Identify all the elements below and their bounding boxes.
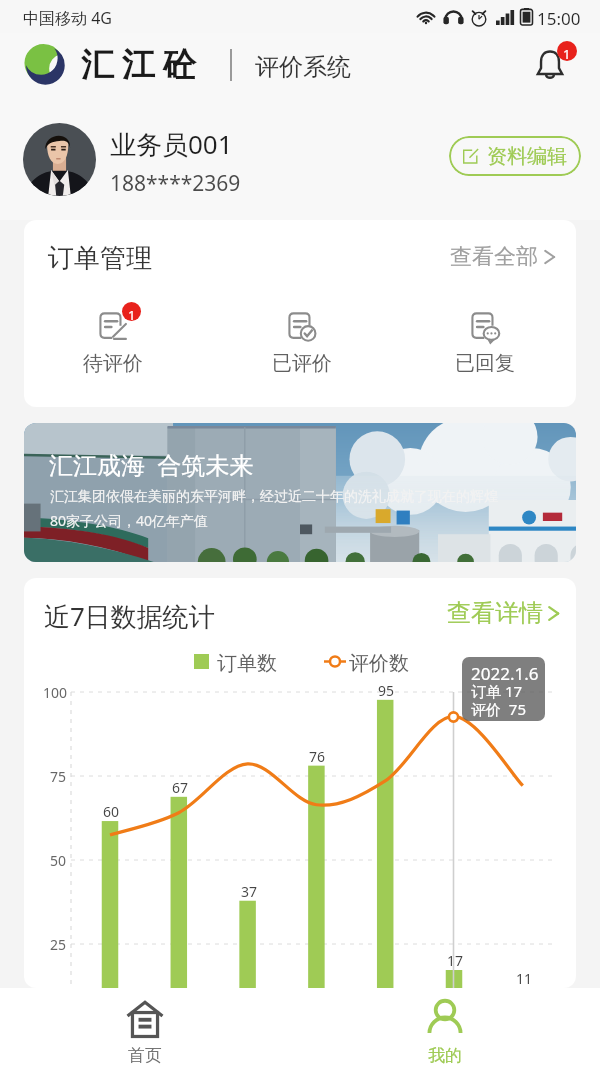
staticText: 1 [128,306,136,324]
button[interactable]: 查看全部 [444,242,562,272]
button[interactable]: 汇江成海 合筑未来 [24,423,576,562]
staticText: 2022.1.6 [471,662,539,685]
staticText: 37 [241,882,258,901]
staticText: 查看全部 [450,243,538,271]
staticText: 25 [50,935,67,954]
staticText: 188****2369 [110,169,241,198]
staticText: 15:00 [537,7,581,30]
staticText: 1 [563,45,571,63]
staticText: 11 [516,969,533,988]
staticText: 评价数 [349,651,409,676]
staticText: 资料编辑 [487,144,567,169]
staticText: 订单 17 [471,681,523,701]
button[interactable]: 查看详情 [441,598,566,628]
button[interactable]: 已评价 [257,304,347,376]
staticText: 近7日数据统计 [44,598,215,634]
staticText: 汇江成海 合筑未来 [49,448,254,481]
staticText: 订单管理 [48,242,152,275]
staticText: 60 [103,802,120,821]
staticText: 80家子公司，40亿年产值 [50,511,209,530]
button[interactable]: 已回复 [440,304,530,376]
staticText: 首页 [128,1045,162,1066]
staticText: 汇江砼 [77,44,200,86]
button[interactable]: 首页 [95,992,195,1064]
staticText: 95 [378,681,395,700]
staticText: 17 [447,951,464,970]
staticText: 待评价 [83,351,143,376]
staticText: 76 [309,747,326,766]
staticText: 中国移动 4G [23,7,112,29]
staticText: 我的 [428,1045,462,1066]
staticText: 已回复 [455,351,515,376]
staticText: 订单数 [217,651,277,676]
staticText: 75 [50,767,67,786]
button[interactable]: 资料编辑 [449,136,581,176]
staticText: 100 [43,683,68,702]
button[interactable]: 我的 [395,992,495,1064]
staticText: 已评价 [272,351,332,376]
staticText: 查看详情 [447,598,543,628]
staticText: 评价系统 [255,52,351,82]
staticText: 评价 75 [471,699,526,719]
staticText: 汇江集团依偎在美丽的东平河畔，经过近二十年的洗礼成就了现在的辉煌 [50,488,498,506]
staticText: 50 [50,851,67,870]
button[interactable]: 1 [68,304,158,376]
staticText: 业务员001 [110,126,233,162]
staticText: 67 [172,778,189,797]
button[interactable]: Notifications [530,41,576,87]
